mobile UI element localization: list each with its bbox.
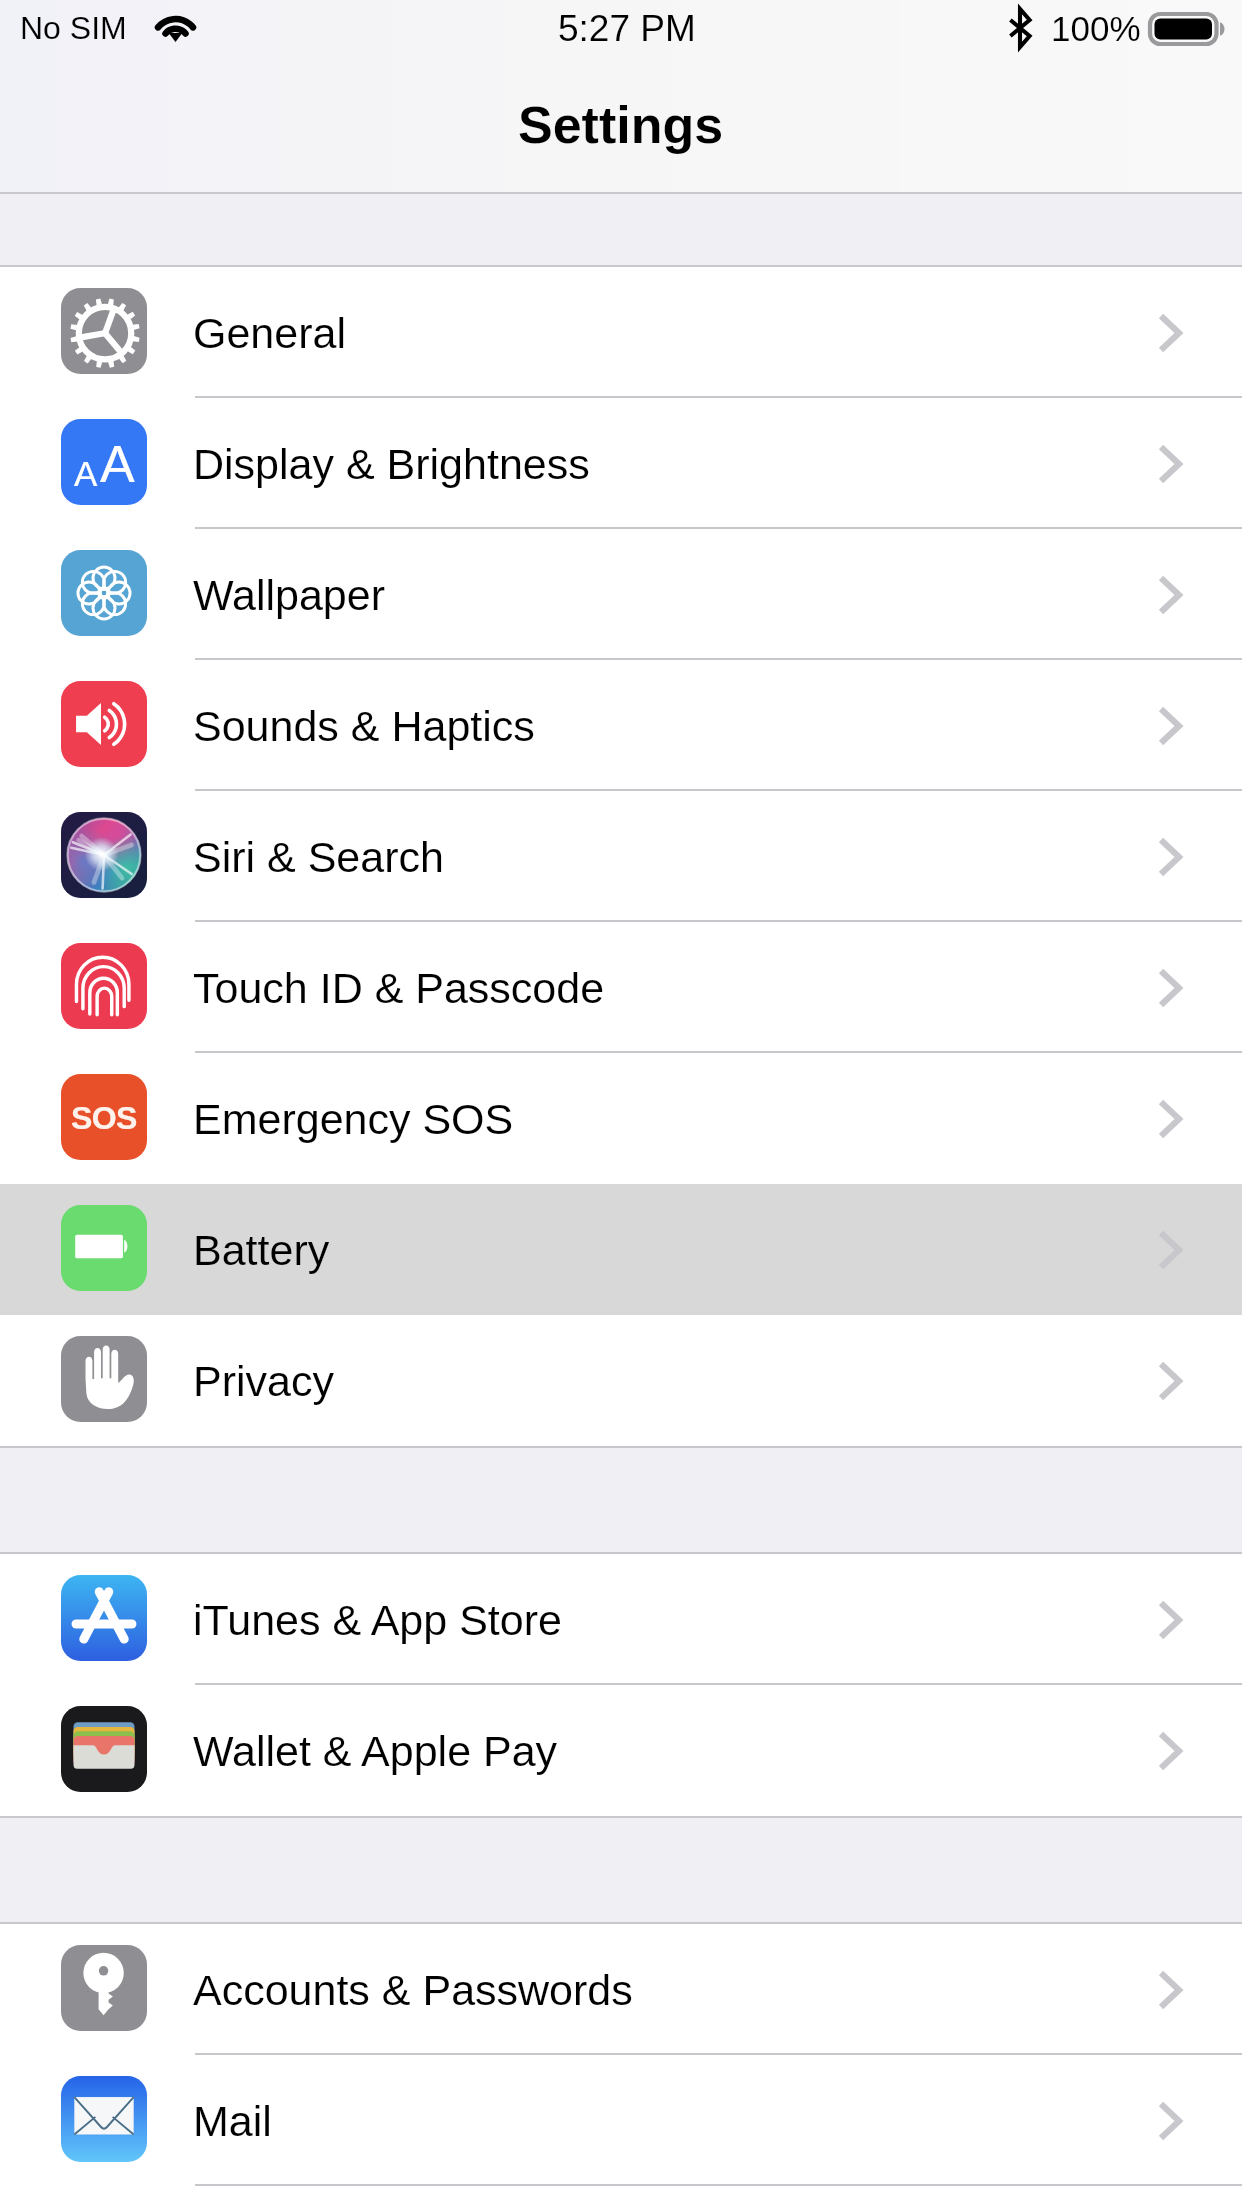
staticText: Wallet & Apple Pay [193, 1727, 558, 1775]
staticText: A [100, 435, 135, 493]
other: Open Wallet & Apple Pay [1158, 1731, 1182, 1771]
button[interactable]: Battery [0, 1184, 1242, 1315]
staticText: Settings [518, 96, 724, 154]
staticText: SOS [71, 1100, 137, 1136]
other: Open iTunes & App Store [1158, 1600, 1182, 1640]
other: Open General [1158, 313, 1182, 353]
other: Open Siri & Search [1158, 837, 1182, 877]
staticText: 100% [1051, 9, 1141, 48]
button[interactable]: Siri & Search [0, 791, 1242, 922]
button[interactable]: iTunes & App Store [0, 1554, 1242, 1685]
staticText: Emergency SOS [193, 1095, 514, 1143]
staticText: 5:27 PM [558, 8, 696, 49]
button[interactable]: A [0, 398, 1242, 529]
button[interactable]: SOS [0, 1053, 1242, 1184]
other: Open Battery [1158, 1230, 1182, 1270]
button[interactable]: Accounts & Passwords [0, 1924, 1242, 2055]
other: Open Accounts & Passwords [1158, 1970, 1182, 2010]
button[interactable]: Sounds & Haptics [0, 660, 1242, 791]
button[interactable]: Privacy [0, 1315, 1242, 1446]
staticText: Display & Brightness [193, 440, 590, 488]
staticText: Mail [193, 2097, 272, 2145]
staticText: A [74, 454, 98, 493]
button[interactable]: Mail [0, 2055, 1242, 2186]
other: Open Sounds & Haptics [1158, 706, 1182, 746]
other: Open Mail [1158, 2101, 1182, 2141]
other: Wi-Fi signal [153, 14, 198, 41]
other: Open Touch ID & Passcode [1158, 968, 1182, 1008]
staticText: Accounts & Passwords [193, 1966, 633, 2014]
staticText: No SIM [20, 10, 127, 46]
button[interactable]: Touch ID & Passcode [0, 922, 1242, 1053]
staticText: iTunes & App Store [193, 1596, 562, 1644]
staticText: Sounds & Haptics [193, 702, 535, 750]
other: Open Display & Brightness [1158, 444, 1182, 484]
staticText: General [193, 309, 346, 357]
staticText: Touch ID & Passcode [193, 964, 605, 1012]
other: Battery full [1148, 12, 1226, 46]
other: Bluetooth [1008, 9, 1032, 47]
button[interactable]: Wallet & Apple Pay [0, 1685, 1242, 1816]
staticText: Privacy [193, 1357, 334, 1405]
other: Open Wallpaper [1158, 575, 1182, 615]
button[interactable]: Wallpaper [0, 529, 1242, 660]
other: Open Privacy [1158, 1361, 1182, 1401]
button[interactable]: General [0, 267, 1242, 398]
other: Open Emergency SOS [1158, 1099, 1182, 1139]
staticText: Battery [193, 1226, 330, 1274]
staticText: Wallpaper [193, 571, 385, 619]
staticText: Siri & Search [193, 833, 444, 881]
